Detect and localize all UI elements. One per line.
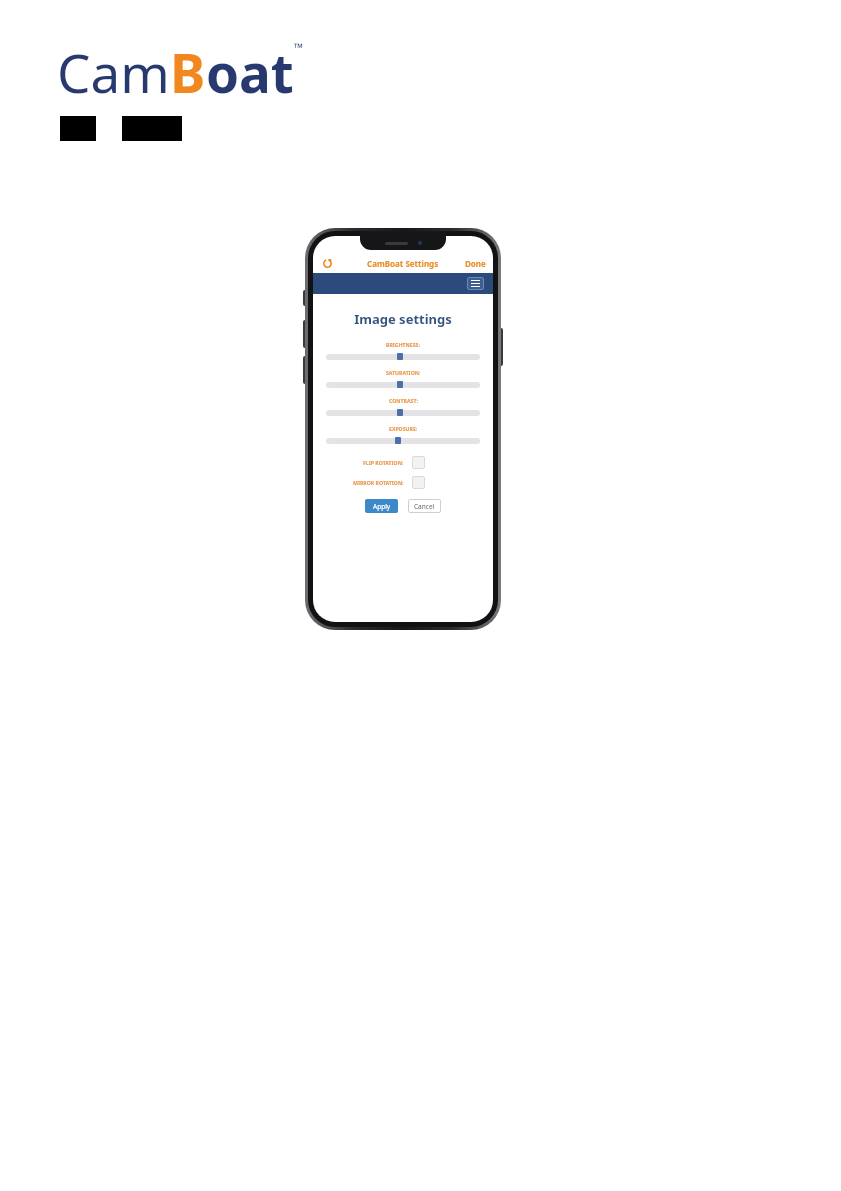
staticText: MIRROR ROTATION:: [353, 479, 404, 486]
staticText: SATURATION:: [386, 369, 421, 376]
staticText: Image settings: [313, 310, 493, 328]
staticText: BRIGHTNESS:: [386, 341, 420, 348]
staticText: Done: [465, 258, 486, 269]
button[interactable]: CONTRAST:: [326, 408, 480, 417]
button[interactable]: Cancel: [408, 499, 441, 513]
staticText: CamBoat Settings: [367, 258, 439, 269]
staticText: Cam: [57, 36, 170, 108]
staticText: Apply: [373, 502, 391, 511]
button[interactable]: Menu: [467, 277, 484, 290]
staticText: EXPOSURE:: [389, 425, 418, 432]
button[interactable]: SATURATION:: [326, 380, 480, 389]
staticText: FLIP ROTATION:: [363, 459, 404, 466]
button[interactable]: MIRROR ROTATION:: [412, 476, 425, 489]
button[interactable]: BRIGHTNESS:: [326, 352, 480, 361]
staticText: oat: [206, 36, 294, 108]
button[interactable]: Done: [465, 258, 486, 269]
staticText: Cancel: [414, 502, 435, 511]
staticText: CONTRAST:: [389, 397, 418, 404]
button[interactable]: FLIP ROTATION:: [412, 456, 425, 469]
button[interactable]: EXPOSURE:: [326, 436, 480, 445]
staticText: B: [170, 36, 206, 108]
staticText: ™: [294, 39, 304, 55]
button[interactable]: Refresh: [320, 256, 334, 270]
button[interactable]: Apply: [365, 499, 398, 513]
